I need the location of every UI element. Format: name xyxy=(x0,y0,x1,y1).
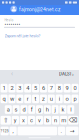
button[interactable]: 9 xyxy=(63,84,71,92)
staticText: w xyxy=(10,95,14,102)
button[interactable]: 8 xyxy=(56,84,63,92)
button[interactable]: j xyxy=(52,105,59,114)
staticText: n xyxy=(54,117,57,124)
staticText: j xyxy=(55,106,56,113)
button[interactable]: f xyxy=(28,105,35,114)
staticText: x xyxy=(22,117,25,124)
button[interactable]: p xyxy=(71,94,78,103)
staticText: p xyxy=(73,95,76,102)
button[interactable]: u xyxy=(48,94,55,103)
staticText: fajmonj@24net.cz xyxy=(19,7,60,12)
staticText: l xyxy=(70,106,71,113)
staticText: 5 xyxy=(34,85,37,91)
button[interactable]: , xyxy=(9,127,17,135)
staticText: f xyxy=(31,106,33,113)
button[interactable]: 0 xyxy=(71,84,78,92)
staticText: k xyxy=(61,106,64,113)
button[interactable]: z xyxy=(40,94,47,103)
button[interactable]: 2 xyxy=(8,84,15,92)
staticText: DALŠÍ xyxy=(59,71,71,77)
button[interactable]: v xyxy=(36,116,43,125)
button[interactable]: o xyxy=(63,94,71,103)
staticText: ‹ xyxy=(11,70,13,78)
staticText: t xyxy=(35,95,37,102)
staticText: v xyxy=(38,117,41,124)
staticText: z xyxy=(42,95,45,102)
button[interactable]: 7 xyxy=(48,84,55,92)
button[interactable]: l xyxy=(67,105,74,114)
button[interactable]: d xyxy=(20,105,27,114)
button[interactable]: . xyxy=(58,127,65,135)
staticText: , xyxy=(13,128,14,134)
button[interactable]: s xyxy=(13,105,20,114)
staticText: ⇧ xyxy=(3,117,8,124)
staticText: ?123 xyxy=(1,129,9,133)
staticText: i xyxy=(59,95,60,102)
button[interactable]: e xyxy=(16,94,23,103)
button[interactable]: ⌫ xyxy=(68,116,78,125)
staticText: a xyxy=(7,106,10,113)
staticText: 9 xyxy=(66,85,69,91)
staticText: g xyxy=(38,106,41,113)
button[interactable]: q xyxy=(0,94,8,103)
button[interactable]: → xyxy=(66,127,78,135)
staticText: ⌫ xyxy=(69,117,78,124)
button[interactable]: Zapomněl jste heslo? xyxy=(5,34,41,38)
button[interactable]: y xyxy=(12,116,19,125)
staticText: 8 xyxy=(58,85,61,91)
button[interactable]: n xyxy=(52,116,59,125)
button[interactable]: DALŠÍ xyxy=(59,70,74,78)
button[interactable]: h xyxy=(44,105,51,114)
staticText: e xyxy=(18,95,21,102)
staticText: 7 xyxy=(50,85,53,91)
staticText: Heslo xyxy=(5,18,14,22)
staticText: h xyxy=(46,106,49,113)
staticText: 0 xyxy=(73,85,76,91)
button[interactable]: g xyxy=(36,105,43,114)
staticText: c xyxy=(30,117,33,124)
staticText: d xyxy=(22,106,25,113)
button[interactable]: ⇧ xyxy=(0,116,11,125)
staticText: › xyxy=(72,71,74,77)
staticText: •••••••• xyxy=(5,22,21,28)
staticText: 3 xyxy=(18,85,21,91)
staticText: q xyxy=(2,95,5,102)
button[interactable]: k xyxy=(59,105,66,114)
staticText: → xyxy=(70,128,75,134)
staticText: 2 xyxy=(10,85,13,91)
button[interactable]: a xyxy=(5,105,12,114)
staticText: u xyxy=(50,95,53,102)
button[interactable]: w xyxy=(8,94,15,103)
button[interactable]: b xyxy=(44,116,51,125)
button[interactable]: 5 xyxy=(32,84,39,92)
staticText: 4 xyxy=(26,85,29,91)
staticText: s xyxy=(15,106,18,113)
staticText: 1 xyxy=(2,85,5,91)
staticText: 6 xyxy=(42,85,45,91)
staticText: Zapomněl jste heslo? xyxy=(5,34,41,38)
button[interactable]: 3 xyxy=(16,84,23,92)
button[interactable]: 4 xyxy=(24,84,31,92)
button[interactable]: i xyxy=(56,94,63,103)
button[interactable]: m xyxy=(60,116,67,125)
staticText: r xyxy=(27,95,29,102)
staticText: o xyxy=(66,95,69,102)
button[interactable]: 6 xyxy=(40,84,47,92)
button[interactable]: x xyxy=(20,116,27,125)
button[interactable]: ?123 xyxy=(0,127,9,135)
staticText: y xyxy=(14,117,17,124)
button[interactable]: r xyxy=(24,94,31,103)
button[interactable]: c xyxy=(28,116,35,125)
staticText: m xyxy=(61,117,66,124)
button[interactable]: 1 xyxy=(0,84,8,92)
button[interactable]: Previous field xyxy=(8,70,16,78)
staticText: b xyxy=(46,117,49,124)
staticText: . xyxy=(60,128,62,134)
button[interactable]: t xyxy=(32,94,39,103)
